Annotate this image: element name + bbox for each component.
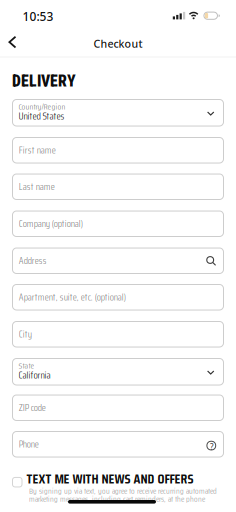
staticText: State	[18, 359, 34, 372]
staticText: Phone	[19, 437, 39, 452]
button[interactable]: Text me with news and offers	[12, 471, 193, 493]
staticText: California	[18, 367, 50, 383]
button[interactable]: First name	[12, 137, 224, 163]
button[interactable]: Company (optional)	[12, 210, 224, 237]
staticText: Country/Region	[18, 100, 65, 113]
button[interactable]: State	[12, 358, 224, 385]
button[interactable]: ZIP code	[12, 394, 224, 421]
staticText: City	[19, 327, 32, 342]
button[interactable]: City	[12, 321, 224, 347]
button[interactable]: Country/Region	[12, 99, 224, 126]
button[interactable]: Back	[6, 33, 28, 50]
staticText: Apartment, suite, etc. (optional)	[19, 290, 126, 305]
staticText: Address	[19, 253, 47, 268]
staticText: Last name	[19, 179, 55, 194]
staticText: ?	[210, 442, 214, 452]
staticText: Checkout	[93, 36, 142, 51]
button[interactable]: Apartment, suite, etc. (optional)	[12, 284, 224, 310]
button[interactable]: Phone	[12, 431, 224, 457]
staticText: ZIP code	[19, 400, 46, 415]
staticText: Company (optional)	[19, 216, 83, 231]
staticText: marketing messages, including cart remin…	[29, 492, 205, 505]
staticText: By signing up via text, you agree to rec…	[29, 484, 217, 497]
button[interactable]: Last name	[12, 173, 224, 200]
staticText: 10:53	[22, 8, 53, 24]
staticText: United States	[18, 108, 64, 124]
staticText: DELIVERY	[12, 72, 76, 90]
staticText: First name	[19, 143, 56, 158]
staticText: TEXT ME WITH NEWS AND OFFERS	[26, 468, 193, 489]
button[interactable]: Address	[12, 247, 224, 274]
